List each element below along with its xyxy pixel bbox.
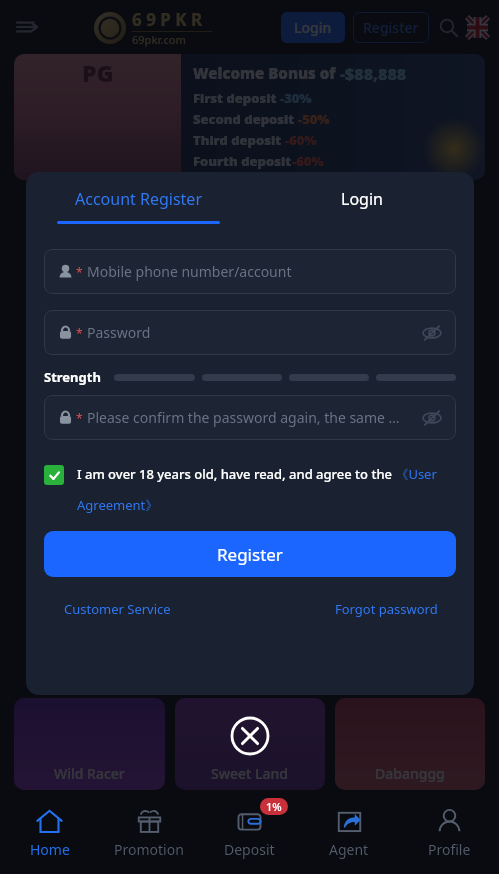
staticText: Fourth deposit — [193, 152, 292, 170]
staticText: Deposit — [224, 840, 275, 859]
staticText: * — [76, 410, 83, 426]
staticText: -60% — [292, 152, 324, 170]
staticText: Customer Service — [64, 600, 171, 618]
staticText: -60% — [285, 131, 317, 149]
button[interactable]: 6 9 P K R — [94, 8, 212, 47]
button[interactable]: Sweet Land — [175, 698, 325, 790]
button[interactable]: Show password — [420, 321, 444, 345]
staticText: Promotion — [114, 840, 184, 859]
staticText: Account Register — [75, 188, 202, 210]
staticText: Please confirm the password again, the s… — [87, 408, 420, 427]
button[interactable]: I am over 18 years old, have read, and a… — [44, 465, 456, 513]
button[interactable]: Show password — [420, 406, 444, 430]
button[interactable]: Dabanggg — [335, 698, 485, 790]
staticText: -50% — [298, 110, 330, 128]
button[interactable]: Menu — [10, 10, 44, 44]
button[interactable]: Agent — [299, 792, 399, 874]
staticText: -$88,888 — [340, 63, 407, 85]
staticText: Wild Racer — [54, 764, 125, 783]
button[interactable]: Promotion — [99, 792, 199, 874]
staticText: Second deposit — [193, 110, 298, 128]
staticText: 6 9 P K R — [132, 8, 203, 31]
button[interactable]: * — [44, 310, 456, 355]
staticText: I am over 18 years old, have read, and a… — [77, 465, 456, 513]
staticText: Strength — [44, 368, 101, 386]
button[interactable]: Login — [281, 12, 345, 43]
staticText: Register — [217, 543, 283, 566]
staticText: Login — [294, 18, 332, 37]
staticText: Profile — [428, 840, 471, 859]
staticText: Third deposit — [193, 131, 285, 149]
staticText: Dabanggg — [375, 764, 445, 783]
button[interactable]: 1% — [199, 792, 299, 874]
button[interactable]: Language — [465, 15, 489, 39]
button[interactable]: Login — [250, 182, 474, 230]
staticText: Password — [87, 323, 420, 342]
staticText: Forgot password — [335, 600, 438, 618]
staticText: Welcome Bonus of — [193, 63, 340, 83]
staticText: First deposit — [193, 89, 280, 107]
button[interactable]: Register — [353, 12, 429, 43]
staticText: 69pkr.com — [132, 32, 186, 47]
button[interactable]: PG — [14, 54, 485, 180]
staticText: * — [76, 325, 83, 341]
button[interactable]: Search — [436, 15, 460, 39]
button[interactable]: Register — [44, 531, 456, 577]
staticText: * — [76, 264, 83, 280]
staticText: Login — [341, 188, 383, 210]
button[interactable]: Wild Racer — [14, 698, 165, 790]
staticText: Mobile phone number/account — [87, 262, 444, 281]
staticText: 1% — [266, 799, 282, 814]
button[interactable]: Home — [0, 792, 99, 874]
staticText: -30% — [280, 89, 312, 107]
button[interactable]: Forgot password — [317, 596, 456, 622]
staticText: PG — [82, 57, 114, 88]
staticText: Agent — [329, 840, 369, 859]
button[interactable]: Account Register — [26, 182, 250, 230]
staticText: Register — [363, 18, 419, 37]
staticText: Sweet Land — [211, 764, 289, 783]
button[interactable]: Profile — [399, 792, 499, 874]
button[interactable]: Close — [230, 716, 270, 756]
staticText: Home — [30, 840, 70, 859]
button[interactable]: * — [44, 395, 456, 440]
button[interactable]: * — [44, 249, 456, 294]
button[interactable]: Customer Service — [44, 596, 191, 622]
